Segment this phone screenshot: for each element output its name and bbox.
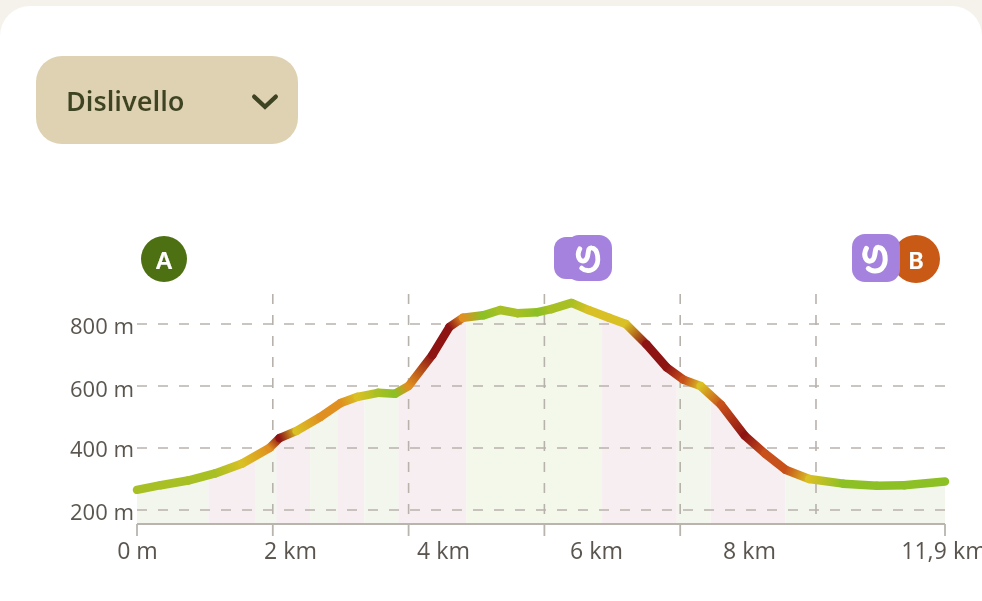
staticText: 200 m — [70, 496, 135, 526]
staticText: 0 m — [117, 534, 158, 565]
staticText: 11,9 km — [901, 534, 982, 565]
staticText: 4 km — [417, 534, 470, 565]
staticText: 2 km — [264, 534, 317, 565]
staticText: 400 m — [70, 433, 135, 463]
button[interactable]: Waypoint — [852, 234, 900, 282]
staticText: 8 km — [723, 534, 776, 565]
staticText: 6 km — [570, 534, 623, 565]
button[interactable]: B — [892, 235, 940, 283]
staticText: A — [156, 243, 173, 276]
staticText: B — [908, 243, 924, 276]
button[interactable]: Waypoints — [566, 235, 612, 281]
staticText: 600 m — [70, 373, 135, 403]
staticText: Dislivello — [66, 82, 185, 119]
staticText: 800 m — [70, 310, 135, 340]
button[interactable]: A — [141, 236, 187, 282]
button[interactable]: Dislivello — [36, 56, 298, 144]
